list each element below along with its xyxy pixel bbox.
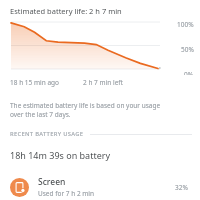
- staticText: 100%: [177, 20, 194, 29]
- staticText: Used for 7 h 2 min: [38, 189, 95, 198]
- staticText: Estimated battery life: 2 h 7 min: [10, 6, 122, 16]
- staticText: 2 h 7 min left: [83, 78, 123, 87]
- staticText: RECENT BATTERY USAGE: [10, 130, 84, 138]
- other: Screen usage: [10, 178, 29, 197]
- staticText: 18 h 15 min ago: [10, 78, 59, 87]
- staticText: 50%: [181, 45, 194, 54]
- staticText: 32%: [175, 183, 188, 192]
- staticText: Screen: [38, 176, 66, 188]
- staticText: 18h 14m 39s on battery: [10, 149, 111, 161]
- button[interactable]: Screen usage: [0, 174, 200, 200]
- staticText: 0%: [184, 70, 194, 75]
- staticText: The estimated battery life is based on y…: [10, 101, 161, 119]
